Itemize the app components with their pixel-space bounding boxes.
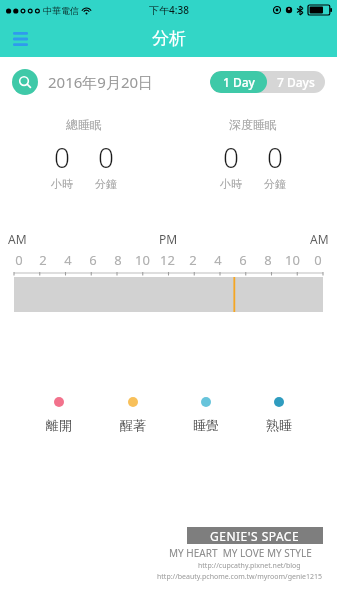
staticText: 8 (114, 251, 122, 269)
staticText: 分析 (152, 28, 186, 49)
staticText: 深度睡眠 (229, 117, 277, 132)
button[interactable]: 7 Days (267, 71, 325, 93)
staticText: 1 Day (223, 74, 255, 90)
staticText: 中華電信 (43, 5, 79, 16)
staticText: GENIE'S SPACE (210, 528, 300, 544)
staticText: 2016年9月20日 (48, 72, 154, 92)
button[interactable]: 熟睡 (242, 397, 315, 433)
staticText: 0 (267, 138, 283, 176)
staticText: 4 (64, 251, 72, 269)
button[interactable]: 醒著 (96, 397, 169, 433)
button[interactable]: 1 Day (210, 71, 267, 93)
button[interactable]: 離開 (22, 397, 96, 433)
button[interactable]: 睡覺 (169, 397, 242, 433)
staticText: 醒著 (120, 417, 146, 433)
staticText: MY HEART MY LOVE MY STYLE (169, 546, 312, 560)
staticText: 0 (54, 138, 70, 176)
staticText: 6 (239, 251, 247, 269)
staticText: http://cupcathy.pixnet.net/blog (198, 561, 301, 571)
staticText: 10 (135, 251, 150, 269)
staticText: 離開 (46, 417, 72, 433)
staticText: 10 (285, 251, 300, 269)
staticText: 分鐘 (95, 177, 117, 191)
staticText: 6 (89, 251, 97, 269)
staticText: 小時 (51, 177, 73, 191)
staticText: 0 (98, 138, 114, 176)
staticText: 7 Days (277, 74, 315, 90)
button[interactable]: Menu (0, 20, 40, 57)
staticText: 熟睡 (266, 417, 292, 433)
staticText: 0 (15, 251, 23, 269)
staticText: 2 (189, 251, 197, 269)
staticText: AM (8, 231, 27, 247)
staticText: 8 (264, 251, 272, 269)
staticText: 總睡眠 (66, 117, 102, 132)
staticText: 睡覺 (193, 417, 219, 433)
staticText: 2 (39, 251, 47, 269)
staticText: 0 (314, 251, 322, 269)
staticText: 4 (214, 251, 222, 269)
staticText: 0 (223, 138, 239, 176)
staticText: http://beauty.pchome.com.tw/myroom/genie… (157, 572, 323, 582)
staticText: 分鐘 (264, 177, 286, 191)
staticText: 小時 (220, 177, 242, 191)
staticText: PM (159, 231, 178, 247)
button[interactable]: Search date (12, 69, 38, 95)
staticText: AM (310, 231, 329, 247)
staticText: 下午4:38 (149, 3, 189, 17)
staticText: 12 (160, 251, 175, 269)
